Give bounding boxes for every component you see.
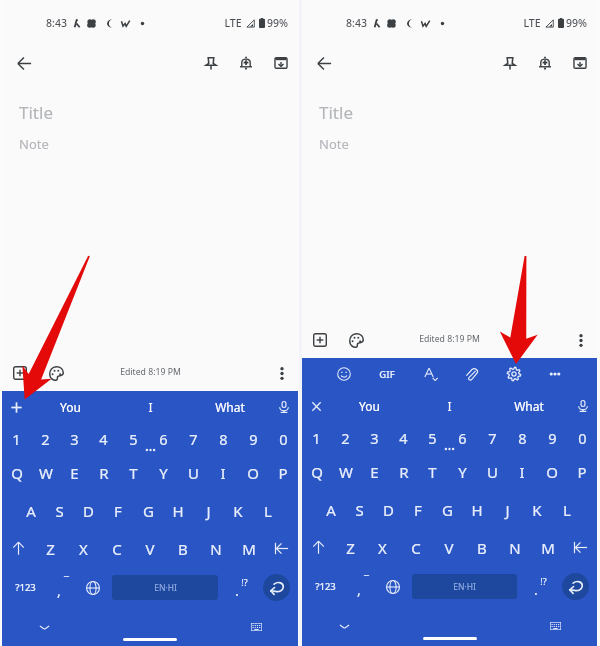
button[interactable]: What bbox=[190, 391, 270, 423]
button[interactable]: O bbox=[238, 454, 268, 492]
button[interactable]: 1 bbox=[302, 422, 331, 453]
button[interactable]: Period bbox=[228, 567, 254, 608]
button[interactable]: 3 bbox=[60, 423, 89, 454]
button[interactable]: 2 bbox=[331, 422, 360, 453]
button[interactable]: Back bbox=[302, 46, 346, 80]
button[interactable]: 7 bbox=[477, 422, 507, 453]
button[interactable]: G bbox=[133, 492, 163, 530]
button[interactable]: Voice input bbox=[569, 392, 597, 420]
button[interactable]: B bbox=[166, 530, 199, 567]
button[interactable]: 8 bbox=[507, 422, 537, 453]
button[interactable]: W bbox=[331, 453, 360, 491]
button[interactable]: 7 bbox=[178, 423, 208, 454]
button[interactable]: 5 bbox=[118, 423, 148, 454]
button[interactable]: 0 bbox=[567, 422, 597, 453]
button[interactable]: O bbox=[537, 453, 567, 491]
button[interactable]: Close bbox=[302, 392, 330, 420]
button[interactable]: H bbox=[462, 491, 492, 529]
button[interactable]: M bbox=[531, 529, 564, 566]
button[interactable]: More options bbox=[268, 359, 296, 387]
button[interactable]: N bbox=[199, 530, 232, 567]
button[interactable]: Shift bbox=[2, 530, 34, 567]
button[interactable]: Language bbox=[78, 567, 108, 608]
button[interactable]: What bbox=[489, 390, 569, 422]
button[interactable]: Pin bbox=[193, 46, 228, 80]
button[interactable]: S bbox=[45, 492, 74, 530]
button[interactable]: M bbox=[232, 530, 265, 567]
button[interactable]: Change keyboard bbox=[215, 608, 298, 646]
button[interactable]: ?123 bbox=[2, 567, 48, 608]
button[interactable]: A bbox=[316, 491, 345, 529]
button[interactable]: G bbox=[432, 491, 462, 529]
button[interactable]: N bbox=[498, 529, 531, 566]
button[interactable]: T bbox=[418, 453, 447, 491]
button[interactable]: A bbox=[16, 492, 45, 530]
button[interactable]: I bbox=[409, 390, 489, 422]
button[interactable]: Add bbox=[6, 359, 34, 387]
button[interactable]: Palette bbox=[342, 326, 371, 355]
button[interactable]: 9 bbox=[238, 423, 268, 454]
button[interactable]: 0 bbox=[268, 423, 298, 454]
button[interactable]: I bbox=[507, 453, 537, 491]
button[interactable]: J bbox=[492, 491, 522, 529]
button[interactable]: R bbox=[389, 453, 418, 491]
button[interactable]: H bbox=[163, 492, 193, 530]
button[interactable]: L bbox=[552, 491, 582, 529]
button[interactable]: Back bbox=[2, 46, 46, 80]
button[interactable]: Palette bbox=[42, 359, 71, 388]
button[interactable]: X bbox=[67, 530, 100, 567]
button[interactable]: Q bbox=[2, 454, 31, 492]
button[interactable]: 8 bbox=[208, 423, 238, 454]
button[interactable]: Comma bbox=[348, 566, 378, 607]
button[interactable]: Voice input bbox=[270, 393, 298, 421]
button[interactable]: P bbox=[567, 453, 597, 491]
button[interactable]: Pin bbox=[492, 46, 527, 80]
button[interactable]: GIF bbox=[370, 359, 404, 389]
button[interactable]: Z bbox=[34, 530, 67, 567]
button[interactable]: 2 bbox=[31, 423, 60, 454]
button[interactable]: I bbox=[208, 454, 238, 492]
button[interactable]: EN·HI bbox=[412, 574, 517, 599]
button[interactable]: Language bbox=[378, 566, 408, 607]
button[interactable]: Z bbox=[334, 529, 366, 566]
button[interactable]: V bbox=[133, 530, 166, 567]
button[interactable]: 5 bbox=[418, 422, 447, 453]
button[interactable]: E bbox=[60, 454, 89, 492]
button[interactable]: ?123 bbox=[302, 566, 348, 607]
button[interactable]: L bbox=[253, 492, 283, 530]
button[interactable]: F bbox=[103, 492, 133, 530]
button[interactable]: Backspace bbox=[265, 530, 298, 567]
button[interactable]: B bbox=[465, 529, 498, 566]
button[interactable]: C bbox=[399, 529, 432, 566]
button[interactable]: More bbox=[540, 359, 570, 389]
button[interactable]: V bbox=[432, 529, 465, 566]
button[interactable]: Hide keyboard bbox=[2, 608, 86, 646]
button[interactable]: Reminder bbox=[527, 46, 562, 80]
button[interactable]: R bbox=[89, 454, 118, 492]
button[interactable]: Y bbox=[447, 453, 477, 491]
button[interactable]: Enter bbox=[263, 574, 290, 601]
button[interactable]: Backspace bbox=[564, 529, 597, 566]
button[interactable]: D bbox=[374, 491, 403, 529]
button[interactable]: Q bbox=[302, 453, 331, 491]
button[interactable]: Reminder bbox=[228, 46, 263, 80]
button[interactable]: F bbox=[403, 491, 432, 529]
button[interactable]: Enter bbox=[562, 573, 589, 600]
button[interactable]: 4 bbox=[89, 423, 118, 454]
button[interactable]: X bbox=[366, 529, 399, 566]
button[interactable]: Y bbox=[148, 454, 178, 492]
button[interactable]: 3 bbox=[360, 422, 389, 453]
button[interactable]: Period bbox=[527, 566, 553, 607]
button[interactable]: C bbox=[100, 530, 133, 567]
button[interactable]: W bbox=[31, 454, 60, 492]
button[interactable]: S bbox=[345, 491, 374, 529]
button[interactable]: U bbox=[178, 454, 208, 492]
button[interactable]: Hide keyboard bbox=[302, 607, 386, 645]
button[interactable]: E bbox=[360, 453, 389, 491]
button[interactable]: Text editing bbox=[416, 359, 446, 389]
button[interactable]: 6 bbox=[148, 423, 178, 454]
button[interactable]: Add bbox=[306, 326, 334, 354]
button[interactable]: Change keyboard bbox=[514, 607, 597, 645]
button[interactable]: 6 bbox=[447, 422, 477, 453]
button[interactable]: P bbox=[268, 454, 298, 492]
